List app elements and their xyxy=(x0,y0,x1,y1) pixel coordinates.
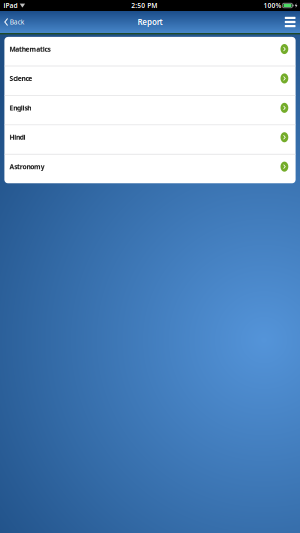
staticText: iPad xyxy=(3,1,17,10)
button[interactable]: Hindi xyxy=(4,125,296,154)
button[interactable]: Mathematics xyxy=(4,37,296,66)
staticText: English xyxy=(9,103,31,112)
staticText: 2:50 PM xyxy=(131,1,157,10)
staticText: Science xyxy=(9,74,32,83)
staticText: Hindi xyxy=(9,133,26,142)
staticText: Mathematics xyxy=(9,45,50,53)
button[interactable]: Astronomy xyxy=(4,154,296,183)
staticText: 100% xyxy=(264,1,282,10)
staticText: Astronomy xyxy=(9,162,45,171)
staticText: Back xyxy=(10,18,25,26)
button[interactable]: English xyxy=(4,96,296,125)
button[interactable]: Menu xyxy=(279,11,300,33)
button[interactable]: Science xyxy=(4,66,296,96)
staticText: Report xyxy=(137,17,162,27)
button[interactable]: Back xyxy=(0,11,31,33)
